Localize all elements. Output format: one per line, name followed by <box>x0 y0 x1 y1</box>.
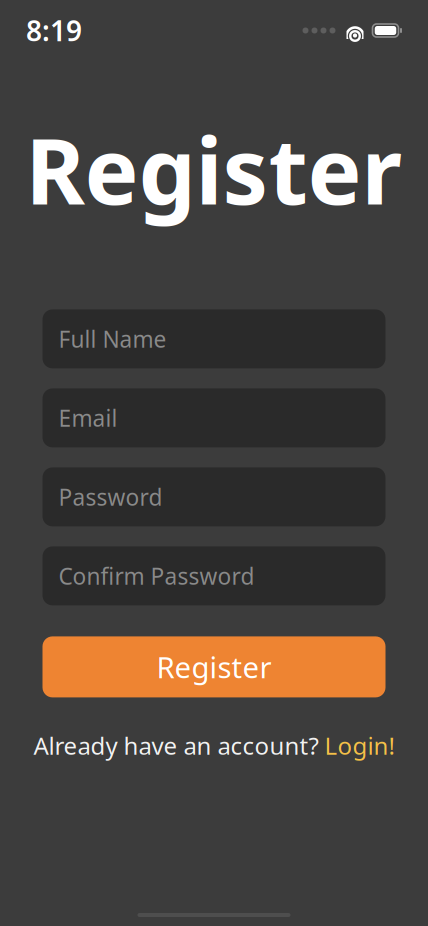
staticText: Full Name <box>58 324 166 354</box>
button[interactable]: Already have an account? <box>21 723 406 767</box>
staticText: Email <box>58 403 117 433</box>
button[interactable]: Password <box>42 467 385 526</box>
staticText: Already have an account? <box>33 729 324 761</box>
button[interactable]: Email <box>42 388 385 447</box>
staticText: Register <box>156 647 271 686</box>
button[interactable]: Register <box>42 636 385 697</box>
staticText: Register <box>25 109 402 229</box>
staticText: 8:19 <box>26 12 82 49</box>
staticText: Login! <box>324 729 394 761</box>
staticText: Confirm Password <box>58 561 254 591</box>
button[interactable]: Full Name <box>42 309 385 368</box>
staticText: Password <box>58 482 162 512</box>
button[interactable]: Confirm Password <box>42 546 385 605</box>
